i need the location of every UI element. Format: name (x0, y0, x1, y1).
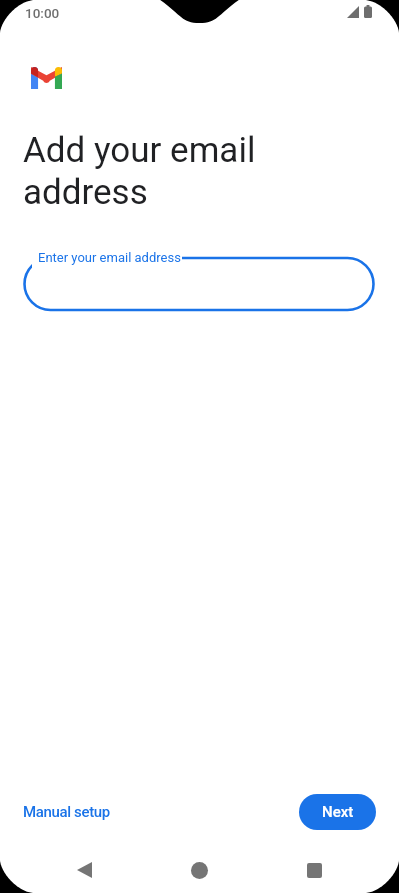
staticText: Next (322, 803, 354, 821)
staticText: Manual setup (23, 803, 110, 821)
button[interactable]: Next (299, 794, 376, 830)
button[interactable]: Recent apps (292, 848, 336, 892)
button[interactable]: Manual setup (15, 797, 118, 827)
button[interactable]: Enter your email address (23, 246, 375, 322)
staticText: Add your email address (23, 130, 256, 213)
staticText: Enter your email address (38, 250, 181, 265)
button[interactable]: Home (177, 848, 221, 892)
button[interactable]: Back (62, 848, 106, 892)
staticText: 10:00 (25, 5, 60, 21)
